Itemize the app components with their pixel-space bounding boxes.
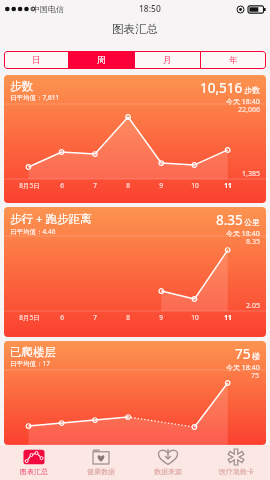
staticText: 8.35 xyxy=(216,211,243,229)
staticText: 6 xyxy=(60,181,64,190)
staticText: 数据来源 xyxy=(154,467,182,476)
staticText: 今天 18:40 xyxy=(226,97,260,107)
staticText: 楼 xyxy=(252,351,260,361)
staticText: 7 xyxy=(93,181,97,190)
staticText: 10 xyxy=(191,181,199,190)
staticText: 8 xyxy=(126,181,130,190)
staticText: 6 xyxy=(60,313,64,322)
staticText: 7 xyxy=(93,313,97,322)
staticText: 周 xyxy=(97,55,106,66)
staticText: 日平均值：4.46 xyxy=(10,227,56,236)
staticText: 图表汇总 xyxy=(112,22,158,36)
staticText: 已爬楼层 xyxy=(10,345,56,359)
button[interactable]: 步行 + 跑步距离 xyxy=(4,207,266,337)
staticText: 公里 xyxy=(244,217,260,227)
staticText: 今天 18:40 xyxy=(226,363,260,373)
staticText: 18:50 xyxy=(139,3,161,15)
staticText: 年 xyxy=(229,55,238,66)
staticText: 22,066 xyxy=(238,105,260,115)
staticText: 8.35 xyxy=(246,237,260,247)
button[interactable]: 日 xyxy=(4,51,68,69)
button[interactable]: 年 xyxy=(201,51,266,69)
staticText: 步数 xyxy=(10,79,33,93)
staticText: 11 xyxy=(224,181,232,190)
staticText: 11 xyxy=(224,313,232,322)
staticText: 中国电信 xyxy=(32,4,64,14)
staticText: 9 xyxy=(159,181,163,190)
staticText: 75 xyxy=(235,345,251,363)
staticText: 日平均值：17 xyxy=(10,359,50,368)
button[interactable]: Health Data xyxy=(67,445,134,480)
button[interactable]: Charts xyxy=(0,445,67,480)
staticText: 8 xyxy=(126,313,130,322)
staticText: 9 xyxy=(159,313,163,322)
staticText: 日 xyxy=(32,55,41,66)
staticText: 2.05 xyxy=(246,301,260,311)
staticText: 1,385 xyxy=(242,169,260,179)
staticText: 8月5日 xyxy=(19,181,40,190)
staticText: 日平均值：7,611 xyxy=(10,93,60,102)
button[interactable]: 步数 xyxy=(4,75,266,203)
staticText: 健康数据 xyxy=(87,467,115,476)
staticText: 医疗急救卡 xyxy=(219,467,254,476)
staticText: 月 xyxy=(163,55,172,66)
staticText: 今天 18:40 xyxy=(226,229,260,239)
staticText: 图表汇总 xyxy=(20,467,48,476)
staticText: 10,516 xyxy=(200,79,243,97)
staticText: 步行 + 跑步距离 xyxy=(10,211,92,227)
staticText: 步数 xyxy=(244,85,260,95)
staticText: 75 xyxy=(251,371,260,381)
button[interactable]: 周 xyxy=(69,51,134,69)
button[interactable]: 已爬楼层 xyxy=(4,341,266,445)
button[interactable]: Sources xyxy=(134,445,202,480)
staticText: 10 xyxy=(191,313,199,322)
staticText: 8月5日 xyxy=(19,313,40,322)
button[interactable]: 月 xyxy=(135,51,200,69)
button[interactable]: Medical ID xyxy=(202,445,270,480)
